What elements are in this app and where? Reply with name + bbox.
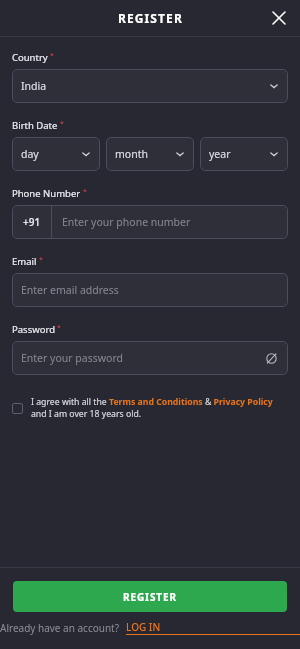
staticText: Enter your phone number [62,215,191,229]
staticText: Birth Date [12,119,58,132]
staticText: day [21,147,39,161]
button[interactable]: REGISTER [13,581,287,612]
button[interactable]: year [200,137,288,171]
staticText: REGISTER [123,590,177,604]
staticText: * [83,187,87,197]
staticText: Already have an account? [0,621,120,635]
button[interactable]: India [12,69,288,103]
staticText: * [50,51,54,61]
staticText: +91 [23,215,41,229]
button[interactable]: Show password [263,350,279,366]
button[interactable]: month [106,137,194,171]
staticText: LOG IN [126,620,161,634]
staticText: Password [12,323,55,336]
button[interactable]: Enter email address [12,273,288,307]
staticText: Email [12,255,37,268]
staticText: * [60,119,64,129]
staticText: Phone Number [12,187,81,200]
staticText: month [115,147,148,161]
button[interactable]: day [12,137,100,171]
staticText: year [209,147,231,161]
button[interactable]: Close [267,6,291,30]
button[interactable]: +91 [12,205,51,239]
staticText: India [21,79,47,93]
staticText: Country [12,51,48,64]
staticText: Enter your password [21,351,123,365]
staticText: * [57,323,61,333]
button[interactable]: I agree with all the Terms and Condition… [12,396,288,420]
staticText: I agree with all the Terms and Condition… [31,396,288,420]
staticText: REGISTER [118,10,183,26]
staticText: Enter email address [21,283,119,297]
staticText: * [39,255,43,265]
button[interactable]: Enter your phone number [52,205,288,239]
button[interactable]: Enter your password [12,341,288,375]
button[interactable]: LOG IN [126,620,300,635]
